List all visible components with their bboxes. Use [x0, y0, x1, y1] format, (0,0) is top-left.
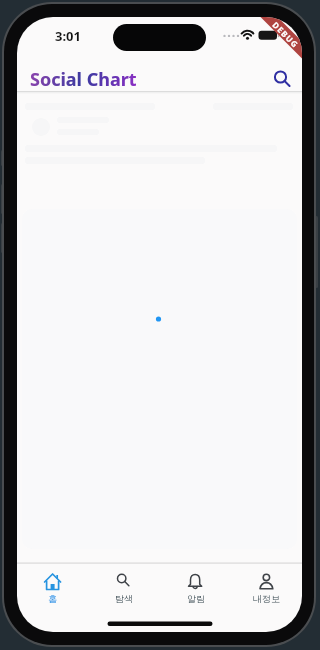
button[interactable]: Social Chart — [30, 67, 137, 92]
button[interactable]: 내정보 — [231, 565, 302, 613]
button[interactable] — [267, 63, 299, 95]
staticText: 탐색 — [115, 593, 133, 604]
button[interactable]: 알림 — [160, 565, 231, 613]
staticText: 알림 — [187, 593, 205, 604]
button[interactable]: 홈 — [17, 565, 88, 613]
staticText: 홈 — [48, 593, 57, 604]
staticText: 내정보 — [253, 593, 280, 604]
staticText: 3:01 — [55, 27, 81, 45]
staticText: DEBUG — [270, 19, 301, 50]
button[interactable]: 탐색 — [88, 565, 159, 613]
